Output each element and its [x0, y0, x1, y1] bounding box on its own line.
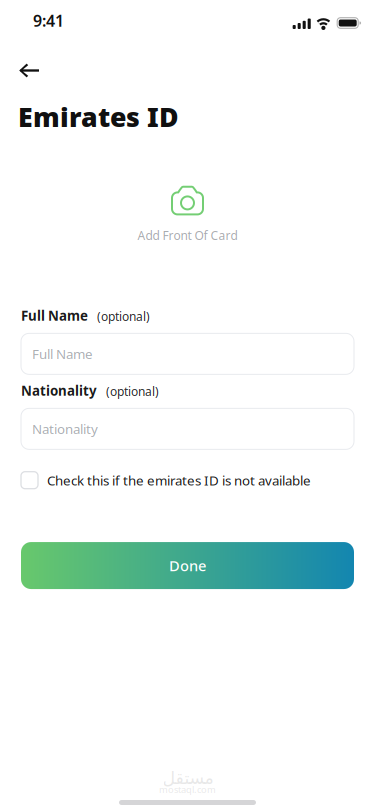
button[interactable]: Back	[0, 54, 56, 87]
staticText: مستقل	[162, 768, 213, 788]
staticText: (optional)	[97, 308, 150, 324]
staticText: mostaql.com	[159, 783, 216, 796]
staticText: (optional)	[106, 383, 159, 399]
staticText: Emirates ID	[18, 99, 179, 134]
staticText: Full Name	[32, 345, 93, 363]
staticText: Nationality	[21, 382, 97, 399]
staticText: Done	[169, 556, 206, 575]
button[interactable]: Add Front Of Card	[0, 185, 375, 243]
button[interactable]: Done	[21, 542, 354, 589]
staticText: Check this if the emirates ID is not ava…	[47, 471, 311, 489]
button[interactable]: Full Name	[21, 333, 354, 374]
staticText: Nationality	[32, 420, 98, 438]
button[interactable]: Check this if the emirates ID is not ava…	[0, 471, 375, 489]
staticText: Add Front Of Card	[137, 227, 237, 243]
staticText: Full Name	[21, 307, 88, 324]
staticText: 9:41	[33, 10, 64, 31]
button[interactable]: Nationality	[21, 408, 354, 449]
